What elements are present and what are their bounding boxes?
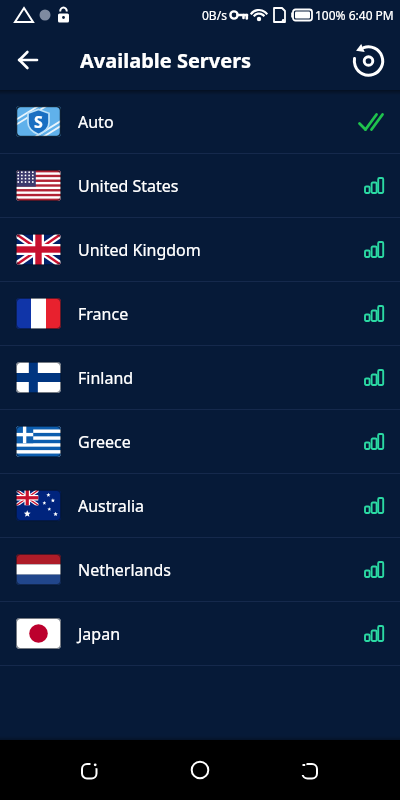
button[interactable]: Greece: [0, 410, 400, 474]
button[interactable]: [286, 740, 334, 800]
staticText: 100% 6:40 PM: [315, 7, 394, 23]
button[interactable]: Australia: [0, 474, 400, 538]
button[interactable]: United Kingdom: [0, 218, 400, 282]
button[interactable]: Finland: [0, 346, 400, 410]
button[interactable]: [176, 740, 224, 800]
staticText: Australia: [78, 495, 145, 517]
staticText: Japan: [78, 623, 121, 645]
staticText: Auto: [78, 111, 114, 133]
button[interactable]: [340, 32, 396, 88]
button[interactable]: Japan: [0, 602, 400, 666]
staticText: Available Servers: [80, 47, 252, 74]
staticText: Greece: [78, 431, 131, 453]
button[interactable]: S: [0, 90, 400, 154]
staticText: S: [34, 111, 43, 133]
staticText: United States: [78, 175, 179, 197]
button[interactable]: [0, 32, 56, 88]
button[interactable]: United States: [0, 154, 400, 218]
button[interactable]: France: [0, 282, 400, 346]
staticText: United Kingdom: [78, 239, 201, 261]
button[interactable]: [66, 740, 114, 800]
staticText: Finland: [78, 367, 134, 389]
button[interactable]: Netherlands: [0, 538, 400, 602]
staticText: France: [78, 303, 129, 325]
staticText: 0B/s: [202, 7, 227, 23]
staticText: Netherlands: [78, 559, 171, 581]
